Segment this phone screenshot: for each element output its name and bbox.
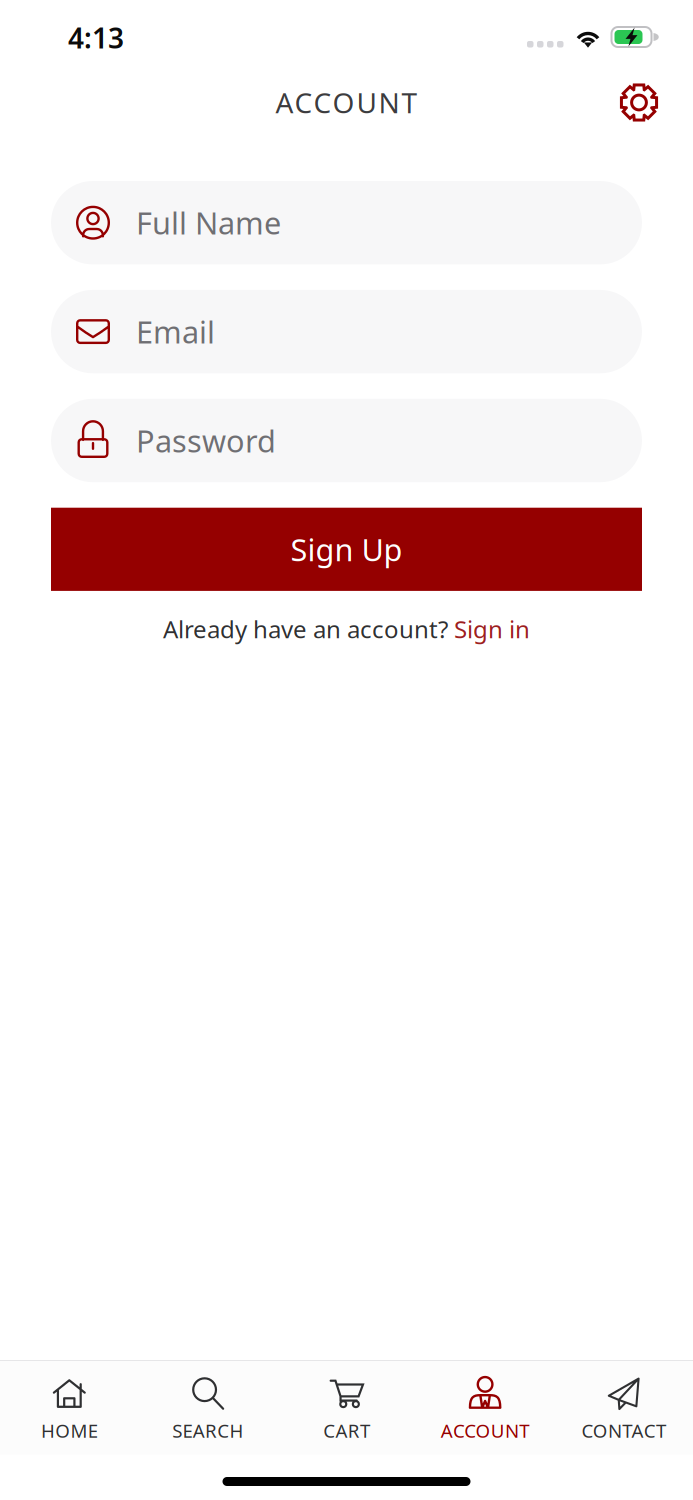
staticText: Already have an account?	[163, 613, 454, 645]
staticText: CONTACT	[581, 1418, 666, 1443]
button[interactable]: SEARCH	[139, 1361, 277, 1455]
staticText: Sign in	[454, 613, 530, 645]
staticText: CART	[323, 1418, 370, 1443]
button[interactable]: HOME	[0, 1361, 139, 1455]
staticText: HOME	[41, 1418, 98, 1443]
staticText: Sign Up	[290, 529, 402, 570]
staticText: 4:13	[68, 19, 124, 56]
staticText: ACCOUNT	[441, 1418, 529, 1443]
button[interactable]: Sign Up	[51, 508, 642, 591]
staticText: Email	[136, 311, 215, 352]
staticText: Password	[136, 420, 276, 461]
button[interactable]: Already have an account?	[155, 607, 538, 651]
button[interactable]: CONTACT	[554, 1361, 693, 1455]
staticText: ACCOUNT	[275, 84, 417, 121]
button[interactable]: CART	[277, 1361, 416, 1455]
button[interactable]: ACCOUNT	[416, 1361, 554, 1455]
button[interactable]: Settings	[611, 74, 667, 130]
staticText: Full Name	[136, 202, 281, 243]
staticText: SEARCH	[172, 1418, 243, 1443]
